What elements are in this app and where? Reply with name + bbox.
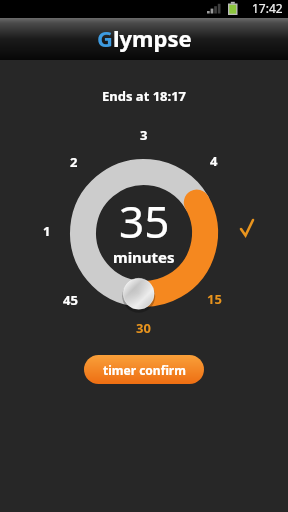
button[interactable]: Timer duration dial bbox=[0, 0, 288, 512]
staticText: 15 bbox=[207, 290, 222, 308]
staticText: 2 bbox=[70, 153, 78, 171]
staticText: 45 bbox=[63, 291, 78, 309]
staticText: G bbox=[97, 23, 113, 53]
button[interactable]: timer confirm bbox=[84, 355, 204, 384]
staticText: 17:42 bbox=[252, 0, 283, 16]
staticText: 3 bbox=[140, 126, 148, 144]
staticText: 30 bbox=[136, 319, 151, 337]
staticText: lympse bbox=[113, 23, 192, 53]
staticText: 4 bbox=[210, 152, 218, 170]
staticText: 35 bbox=[119, 191, 170, 251]
staticText: Ends at 18:17 bbox=[102, 87, 187, 105]
staticText: 1 bbox=[43, 222, 51, 240]
staticText: minutes bbox=[113, 247, 175, 267]
staticText: timer confirm bbox=[103, 362, 186, 378]
